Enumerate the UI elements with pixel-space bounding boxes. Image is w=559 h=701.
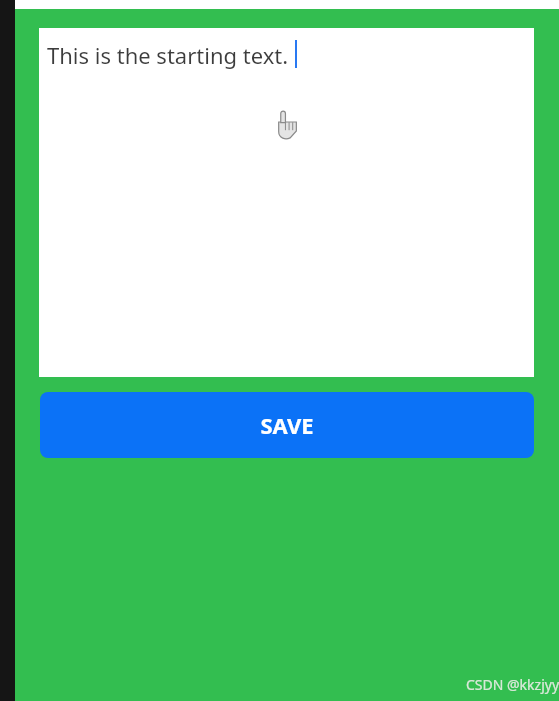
button[interactable]: This is the starting text. xyxy=(39,28,534,377)
button[interactable]: Save xyxy=(40,392,534,458)
staticText: This is the starting text. xyxy=(47,40,289,70)
staticText: SAVE xyxy=(260,410,314,440)
staticText: CSDN @kkzjyy xyxy=(466,675,559,694)
